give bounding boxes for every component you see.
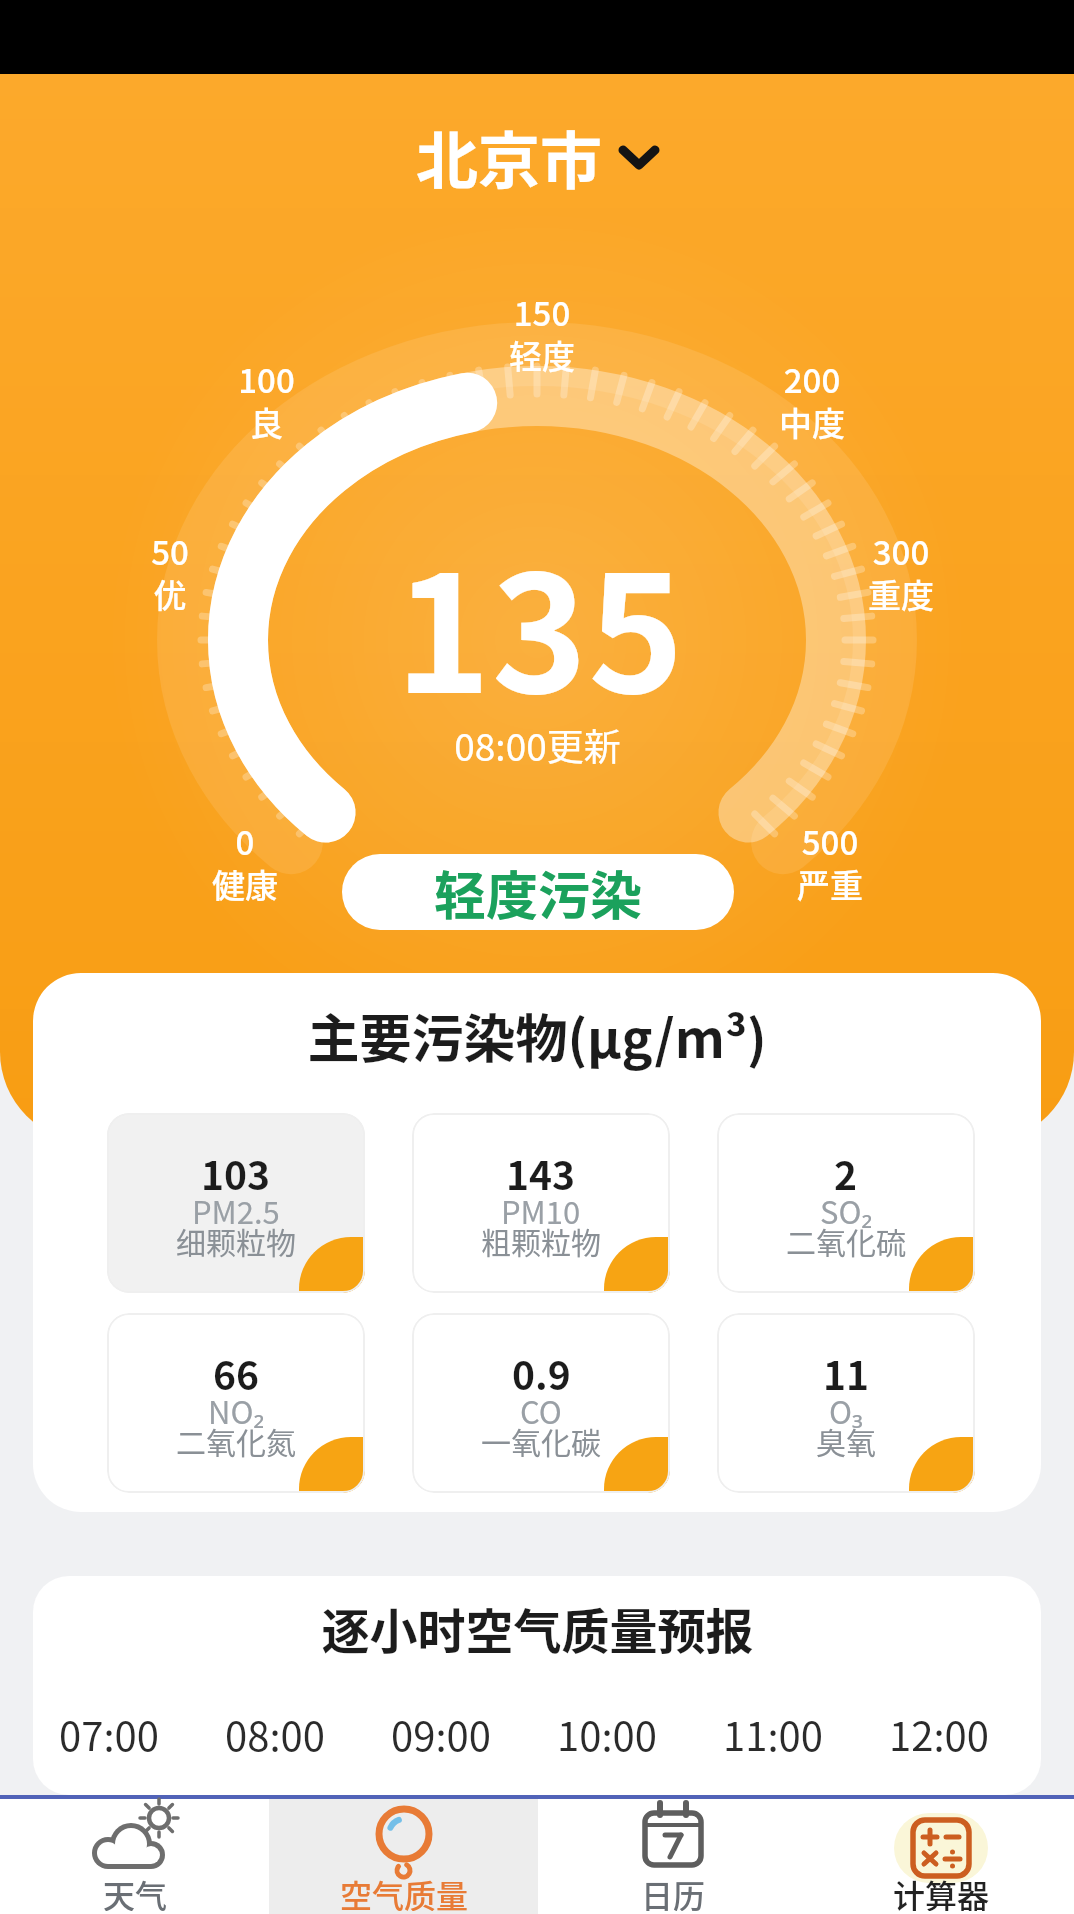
staticText: 日历 (641, 1871, 706, 1911)
button[interactable]: 北京市 (0, 112, 1074, 196)
button[interactable]: 日历 (538, 1799, 807, 1914)
staticText: 08:00更新 (454, 718, 621, 772)
staticText: 北京市 (416, 112, 603, 196)
button[interactable]: 11 (717, 1313, 975, 1493)
staticText: 11 (823, 1345, 870, 1401)
button[interactable]: 轻度污染 (342, 854, 734, 930)
staticText: SO₂ (820, 1188, 873, 1233)
staticText: 一氧化碳 (481, 1419, 601, 1462)
button[interactable]: 103 (107, 1113, 365, 1293)
staticText: 计算器 (893, 1871, 990, 1911)
staticText: 103 (201, 1145, 271, 1201)
staticText: 500 严重 (797, 817, 863, 907)
staticText: 50 优 (151, 527, 189, 617)
staticText: 66 (213, 1345, 260, 1401)
staticText: O₃ (829, 1388, 863, 1433)
button[interactable]: 空气质量 (269, 1799, 538, 1914)
button[interactable]: 2 (717, 1113, 975, 1293)
staticText: CO (520, 1388, 562, 1433)
staticText: 09:00 (391, 1705, 491, 1763)
staticText: PM10 (501, 1188, 581, 1233)
staticText: 135 (395, 505, 685, 740)
staticText: PM2.5 (192, 1188, 280, 1233)
staticText: 轻度污染 (434, 855, 643, 930)
staticText: 100 良 (238, 355, 295, 445)
staticText: 11:00 (723, 1705, 823, 1763)
staticText: 2 (834, 1145, 858, 1201)
staticText: 主要污染物(μg/m³) (307, 998, 767, 1073)
staticText: 12:00 (889, 1705, 989, 1763)
staticText: 粗颗粒物 (481, 1219, 601, 1262)
staticText: 细颗粒物 (176, 1219, 296, 1262)
button[interactable]: 计算器 (807, 1799, 1074, 1914)
staticText: 08:00 (225, 1705, 325, 1763)
button[interactable]: 66 (107, 1313, 365, 1493)
staticText: 0.9 (512, 1345, 571, 1401)
staticText: 143 (506, 1145, 576, 1201)
staticText: NO₂ (208, 1388, 265, 1433)
staticText: 二氧化氮 (176, 1419, 296, 1462)
staticText: 300 重度 (868, 527, 934, 617)
staticText: 07:00 (59, 1705, 159, 1763)
staticText: 150 轻度 (509, 288, 575, 378)
staticText: 天气 (103, 1871, 168, 1911)
staticText: 逐小时空气质量预报 (321, 1593, 754, 1663)
staticText: 二氧化硫 (786, 1219, 906, 1262)
button[interactable]: 0.9 (412, 1313, 670, 1493)
staticText: 10:00 (557, 1705, 657, 1763)
staticText: 臭氧 (816, 1419, 876, 1462)
staticText: 0 健康 (212, 817, 278, 907)
button[interactable]: 天气 (0, 1799, 269, 1914)
staticText: 空气质量 (340, 1871, 469, 1911)
button[interactable]: 143 (412, 1113, 670, 1293)
staticText: 200 中度 (779, 355, 845, 445)
